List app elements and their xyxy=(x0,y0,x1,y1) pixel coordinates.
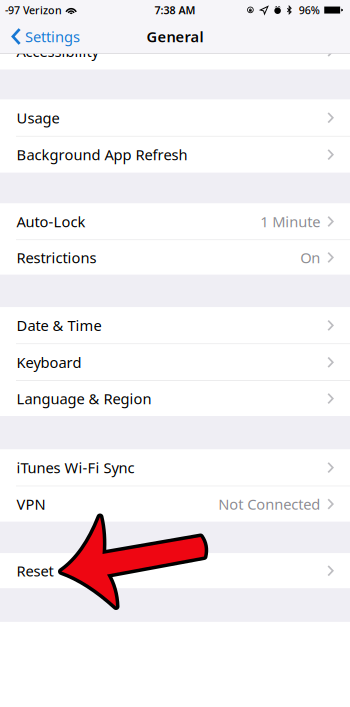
staticText: Settings xyxy=(25,27,80,46)
staticText: -97 Verizon xyxy=(5,3,62,17)
button[interactable]: Language & Region xyxy=(0,381,350,416)
button[interactable]: iTunes Wi-Fi Sync xyxy=(0,449,350,486)
button[interactable]: Settings xyxy=(0,20,80,53)
staticText: Background App Refresh xyxy=(16,145,187,164)
staticText: iTunes Wi-Fi Sync xyxy=(16,458,134,477)
button[interactable]: Usage xyxy=(0,100,350,136)
staticText: Language & Region xyxy=(16,389,151,408)
button[interactable]: Date & Time xyxy=(0,307,350,343)
button[interactable]: Restrictions xyxy=(0,240,350,275)
button[interactable]: Keyboard xyxy=(0,344,350,380)
staticText: Date & Time xyxy=(16,316,101,335)
staticText: 1 Minute xyxy=(260,212,320,231)
staticText: General xyxy=(146,27,203,46)
staticText: Usage xyxy=(16,108,59,127)
staticText: Restrictions xyxy=(16,248,96,267)
button[interactable]: Reset xyxy=(0,553,350,588)
staticText: On xyxy=(300,248,320,267)
button[interactable]: Accessibility xyxy=(0,33,350,69)
staticText: VPN xyxy=(16,494,45,514)
staticText: Keyboard xyxy=(16,353,81,372)
staticText: Reset xyxy=(16,561,53,580)
staticText: Accessibility xyxy=(16,41,98,61)
staticText: 7:38 AM xyxy=(154,3,195,17)
staticText: 96% xyxy=(299,3,320,17)
staticText: Not Connected xyxy=(218,494,320,514)
button[interactable]: Auto-Lock xyxy=(0,203,350,239)
button[interactable]: VPN xyxy=(0,486,350,522)
button[interactable]: Background App Refresh xyxy=(0,137,350,173)
staticText: Auto-Lock xyxy=(16,212,85,231)
